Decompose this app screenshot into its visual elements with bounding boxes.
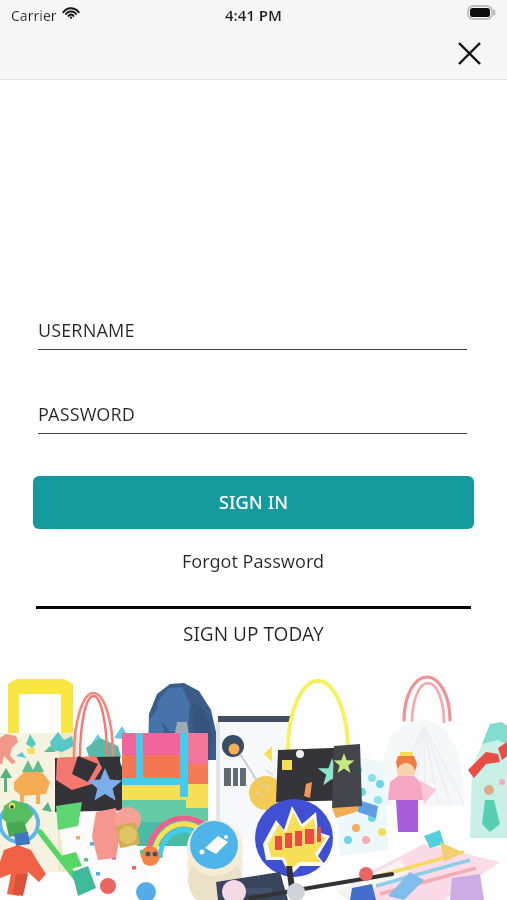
button[interactable]: Close	[447, 31, 491, 75]
staticText: Forgot Password	[182, 549, 325, 574]
staticText: SIGN UP TODAY	[183, 621, 324, 647]
staticText: 4:41 PM	[225, 5, 282, 25]
staticText: SIGN IN	[219, 490, 289, 515]
staticText: PASSWORD	[38, 402, 136, 427]
button[interactable]: SIGN UP TODAY	[0, 621, 507, 647]
button[interactable]: Forgot Password	[0, 549, 507, 574]
button[interactable]: SIGN IN	[33, 476, 474, 529]
staticText: USERNAME	[38, 318, 135, 343]
staticText: Carrier	[11, 6, 57, 25]
